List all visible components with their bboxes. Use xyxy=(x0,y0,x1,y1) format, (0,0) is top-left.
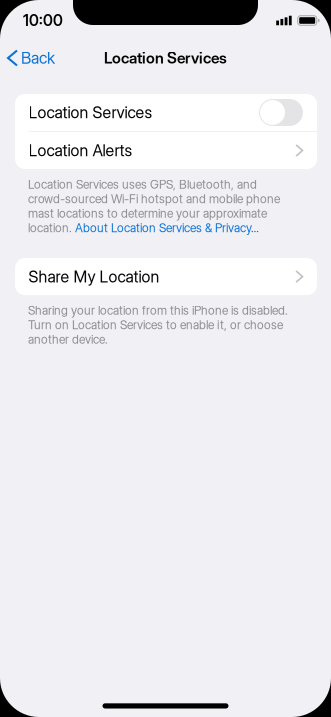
staticText: Back xyxy=(21,48,55,68)
button[interactable]: Share My Location xyxy=(15,258,317,295)
staticText: Sharing your location from this iPhone i… xyxy=(28,303,288,347)
button[interactable]: Location Services xyxy=(15,94,317,131)
staticText: Location Services xyxy=(28,103,152,122)
staticText: Location Services xyxy=(104,49,227,67)
button[interactable]: Back xyxy=(0,41,65,75)
staticText: Share My Location xyxy=(28,267,159,286)
staticText: Location Alerts xyxy=(28,141,132,160)
staticText: 10:00 xyxy=(23,11,63,30)
button[interactable]: Location Alerts xyxy=(15,132,317,169)
staticText: Location Services uses GPS, Bluetooth, a… xyxy=(28,177,280,235)
